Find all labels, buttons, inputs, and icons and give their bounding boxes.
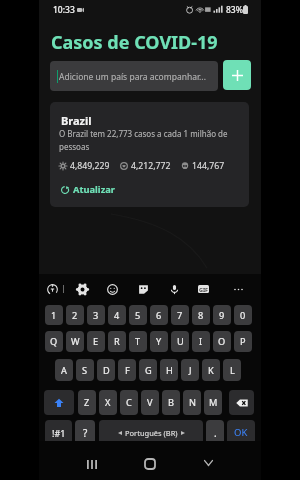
button[interactable]: 1 [45,305,63,325]
button[interactable]: G [139,359,157,381]
button[interactable]: Z [78,390,96,415]
button[interactable]: Adicionar país [223,60,251,90]
button[interactable]: Espaço [99,420,203,445]
staticText: H [166,364,173,377]
button[interactable]: 3 [87,305,105,325]
staticText: W [71,335,80,348]
button[interactable]: P [234,331,252,352]
button[interactable]: R [108,331,126,352]
staticText: T [135,335,141,348]
staticText: 4,849,229 [70,160,110,172]
staticText: D [103,364,110,377]
staticText: N [189,396,196,409]
button[interactable]: 7 [171,305,189,325]
button[interactable]: 6 [150,305,168,325]
button[interactable]: W [66,331,84,352]
staticText: ? [83,426,88,440]
button[interactable]: Adicione um país para acompanhar... [50,61,218,91]
button[interactable]: J [181,359,199,381]
button[interactable]: 4 [108,305,126,325]
button[interactable]: 5 [129,305,147,325]
staticText: . [214,426,217,440]
staticText: V [147,396,153,409]
button[interactable]: A [55,359,73,381]
button[interactable]: S [76,359,94,381]
staticText: O Brazil tem 22,773 casos a cada 1 milhã… [59,128,239,152]
staticText: G [145,364,152,377]
button[interactable]: Voltar [195,450,221,476]
staticText: Adicione um país para acompanhar... [59,71,206,83]
button[interactable]: !#1 [45,420,72,445]
staticText: !#1 [52,427,66,439]
button[interactable]: Autocorreção [45,282,59,296]
button[interactable]: 0 [234,305,252,325]
button[interactable]: N [183,390,201,415]
button[interactable]: V [141,390,159,415]
staticText: Q [50,335,58,348]
staticText: M [209,396,218,409]
button[interactable]: Início [137,451,163,477]
staticText: K [208,364,214,377]
staticText: X [105,396,111,409]
button[interactable]: Apps recentes [79,451,105,477]
staticText: Casos de COVID-19 [51,30,218,55]
button[interactable]: Shift [44,390,74,415]
button[interactable]: 8 [192,305,210,325]
button[interactable]: T [129,331,147,352]
staticText: Y [156,335,162,348]
button[interactable]: E [87,331,105,352]
staticText: P [240,335,246,348]
button[interactable]: Configurações [75,282,89,296]
button[interactable]: C [120,390,138,415]
staticText: GIF [199,286,209,293]
staticText: B [168,396,174,409]
staticText: J [189,364,192,377]
button[interactable]: Figurinhas [136,282,150,296]
button[interactable]: X [99,390,117,415]
button[interactable]: B [162,390,180,415]
staticText: A [61,364,67,377]
staticText: Atualizar [73,183,115,196]
staticText: 0 [240,309,246,322]
staticText: 9 [219,309,225,322]
button[interactable]: Q [45,331,63,352]
button[interactable]: K [202,359,220,381]
staticText: 10:33 [53,4,75,16]
button[interactable]: U [171,331,189,352]
staticText: 3 [93,309,99,322]
staticText: 4,212,772 [131,160,171,172]
button[interactable]: 9 [213,305,231,325]
button[interactable]: D [97,359,115,381]
button[interactable]: F [118,359,136,381]
staticText: F [125,364,130,377]
button[interactable]: Mais opções [231,282,245,296]
button[interactable]: O [213,331,231,352]
staticText: 6 [156,309,162,322]
button[interactable]: Brazil [50,102,249,207]
staticText: R [114,335,120,348]
staticText: Português (BR) [125,428,178,438]
button[interactable]: Atualizar [61,183,115,196]
staticText: OK [234,426,248,439]
staticText: 5 [135,309,141,322]
button[interactable]: OK [227,420,255,445]
button[interactable]: 2 [66,305,84,325]
staticText: 144,767 [192,160,225,172]
button[interactable]: ? [75,420,95,445]
button[interactable]: H [160,359,178,381]
staticText: I [199,335,203,348]
button[interactable]: I [192,331,210,352]
staticText: 7 [177,309,183,322]
button[interactable]: GIF [196,282,210,296]
staticText: Brazil [61,113,92,128]
button[interactable]: M [204,390,222,415]
button[interactable]: L [223,359,241,381]
button[interactable]: Microfone [167,282,181,296]
button[interactable]: Apagar [229,390,254,415]
button[interactable]: Emoji [105,282,119,296]
staticText: 4 [114,309,120,322]
button[interactable]: Y [150,331,168,352]
staticText: Z [84,396,90,409]
staticText: 8 [198,309,204,322]
button[interactable]: . [206,420,224,445]
